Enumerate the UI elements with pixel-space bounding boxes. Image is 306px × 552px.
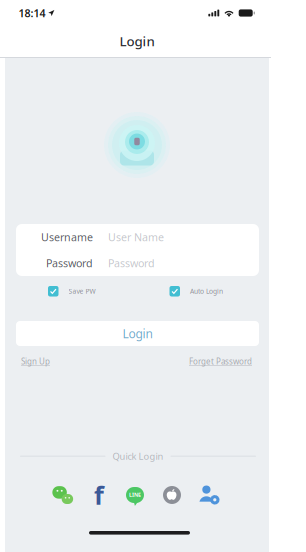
staticText: Login [122, 325, 152, 341]
staticText: f [94, 478, 104, 512]
button[interactable]: Login [16, 321, 259, 346]
staticText: Username [41, 230, 93, 244]
staticText: Sign Up [21, 356, 50, 367]
staticText: User Name [108, 230, 164, 244]
staticText: Forget Password [189, 356, 252, 367]
button[interactable]: Forget Password [189, 356, 252, 367]
staticText: Password [108, 256, 155, 270]
button[interactable]: Save PW [48, 286, 95, 296]
button[interactable]: Facebook login [89, 484, 109, 506]
button[interactable]: Apple login [161, 484, 183, 506]
staticText: Auto Login [190, 287, 223, 296]
button[interactable]: Account login [198, 484, 220, 506]
staticText: Save PW [68, 287, 95, 296]
button[interactable]: Auto Login [169, 286, 223, 296]
staticText: Quick Login [112, 450, 163, 462]
staticText: LINE [129, 491, 141, 498]
button[interactable]: WeChat login [52, 484, 74, 506]
button[interactable]: Sign Up [21, 356, 50, 367]
button[interactable]: LINE login [124, 484, 146, 506]
staticText: 18:14 [18, 6, 45, 20]
staticText: Login [119, 32, 154, 50]
staticText: Password [46, 256, 93, 270]
